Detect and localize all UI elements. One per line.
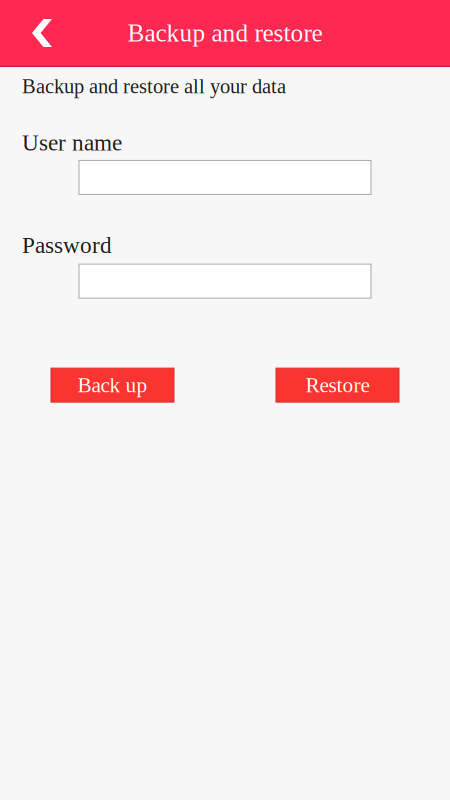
staticText: User name [22,130,122,155]
staticText: Password [22,232,112,258]
button[interactable]: Back [0,0,84,66]
staticText: Backup and restore [127,19,322,47]
staticText: Back up [77,373,147,397]
button[interactable]: Text field [79,160,371,194]
staticText: Backup and restore all your data [22,75,286,98]
button[interactable]: Restore [276,368,399,402]
staticText: Restore [305,373,369,397]
button[interactable]: Text field [79,264,371,298]
button[interactable]: Back up [51,368,174,402]
